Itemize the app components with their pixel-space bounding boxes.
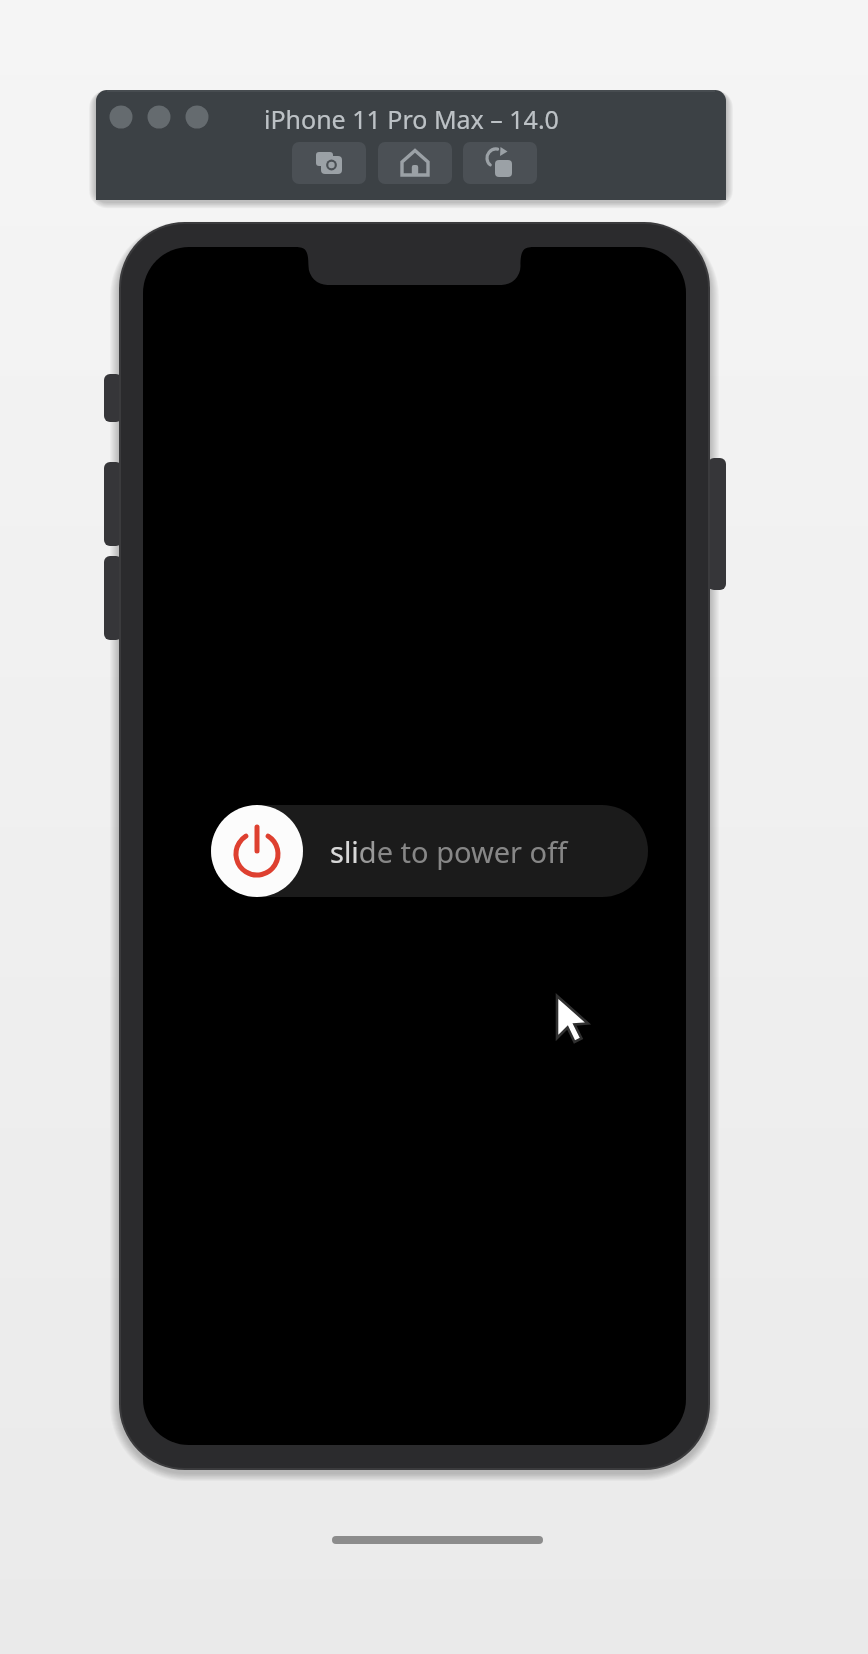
- staticText: slide to power off: [330, 832, 568, 871]
- button[interactable]: Close window: [110, 106, 133, 129]
- staticText: iPhone 11 Pro Max – 14.0: [264, 102, 559, 136]
- button[interactable]: Rotate: [463, 142, 537, 184]
- button[interactable]: Zoom window: [186, 106, 209, 129]
- button[interactable]: Home: [378, 142, 452, 184]
- button[interactable]: Screenshot: [292, 142, 366, 184]
- button[interactable]: Power off: [211, 805, 303, 897]
- button[interactable]: Minimize window: [148, 106, 171, 129]
- button[interactable]: slide to power off: [211, 805, 648, 897]
